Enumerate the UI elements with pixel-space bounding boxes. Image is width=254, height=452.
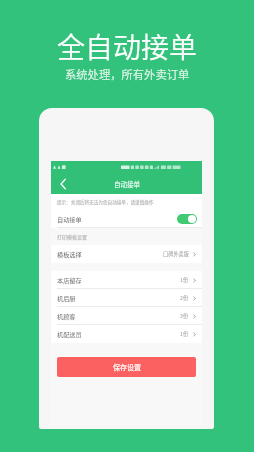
staticText: 口碑外卖版 (163, 250, 189, 258)
staticText: 保存设置 (113, 362, 141, 372)
button[interactable]: 保存设置 (57, 357, 196, 377)
staticText: 机配送员 (57, 330, 82, 339)
staticText: 机后厨 (57, 294, 76, 303)
button[interactable]: 自动接单 (51, 210, 202, 228)
button[interactable]: 本店留存 (51, 271, 202, 289)
staticText: 自动接单 (114, 179, 140, 188)
staticText: 提示：关闭后将无法为您自动接单，请谨慎操作 (57, 199, 154, 206)
button[interactable]: 返回 (55, 176, 71, 192)
staticText: 系统处理，所有外卖订单 (65, 66, 190, 82)
staticText: 本店留存 (57, 276, 82, 285)
staticText: 模板选择 (57, 250, 82, 259)
staticText: 1份 (180, 330, 189, 338)
button[interactable]: 机顾客 (51, 307, 202, 325)
button[interactable]: 机后厨 (51, 289, 202, 307)
button[interactable]: 机配送员 (51, 325, 202, 343)
staticText: 打印模板设置 (57, 233, 88, 240)
staticText: 自动接单 (57, 215, 82, 224)
staticText: 2份 (180, 294, 189, 302)
staticText: 全自动接单 (57, 26, 198, 67)
staticText: 机顾客 (57, 312, 76, 321)
staticText: 1份 (180, 276, 189, 284)
button[interactable]: 模板选择 (51, 245, 202, 263)
staticText: 3份 (180, 312, 189, 320)
button[interactable]: 自动接单开关 (177, 214, 197, 224)
